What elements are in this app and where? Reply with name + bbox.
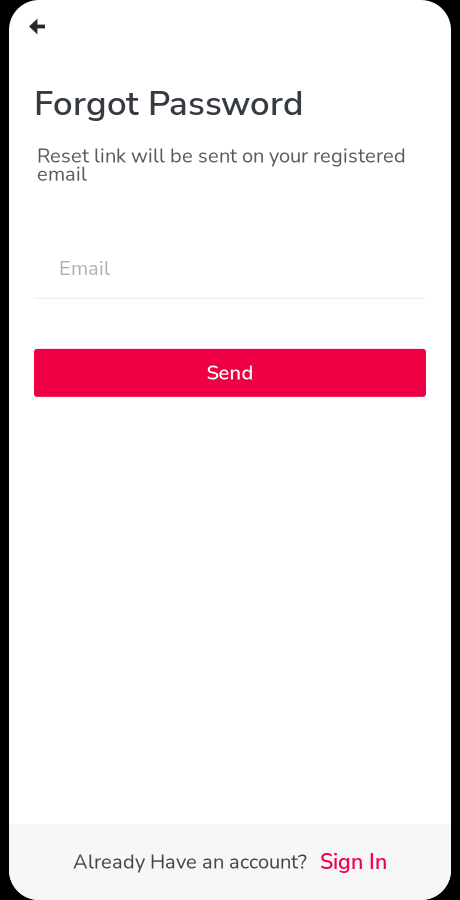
staticText: Reset link will be sent on your register… xyxy=(37,142,406,170)
button[interactable]: Already Have an account? xyxy=(9,824,451,900)
staticText: email xyxy=(37,161,87,188)
staticText: Email xyxy=(59,255,110,282)
staticText: Sign In xyxy=(320,847,387,877)
staticText: Forgot Password xyxy=(34,80,303,127)
staticText: Already Have an account? xyxy=(73,848,307,876)
button[interactable]: Back xyxy=(17,7,57,47)
button[interactable]: Send xyxy=(34,349,426,397)
staticText: Send xyxy=(206,359,253,386)
